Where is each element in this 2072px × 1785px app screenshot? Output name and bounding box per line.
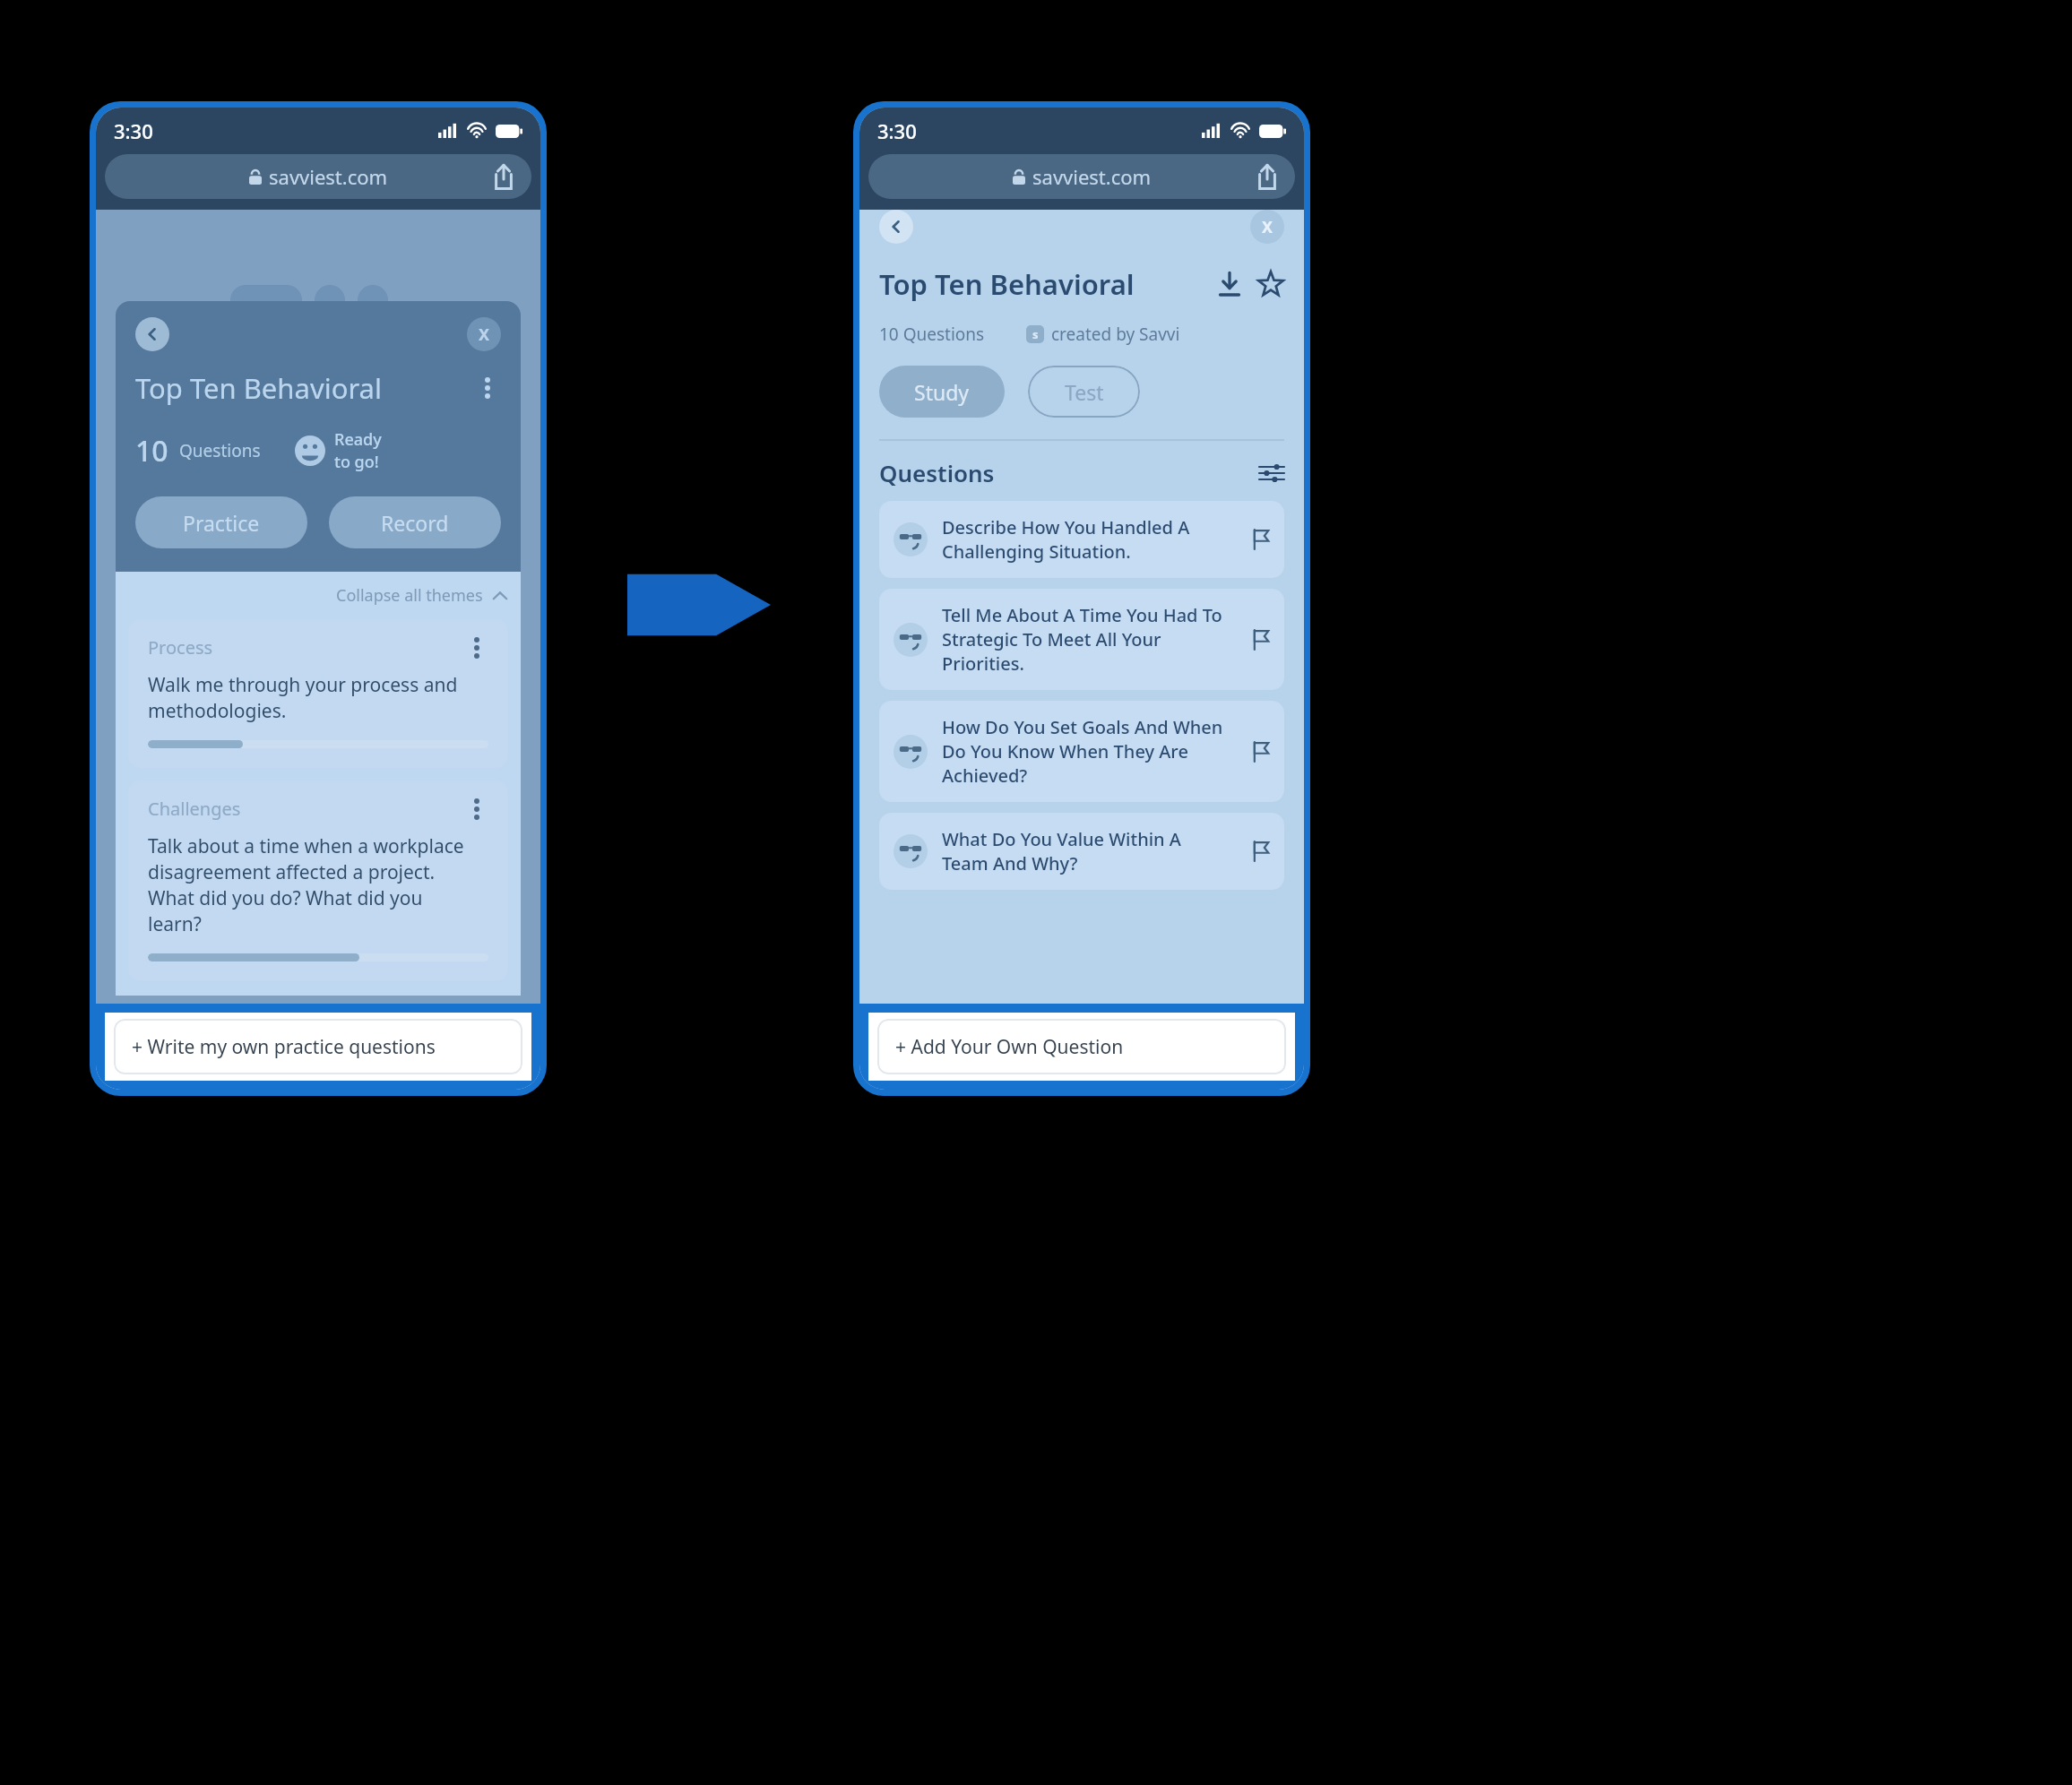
staticText: What did you do? What did you xyxy=(148,885,423,911)
staticText: 3:30 xyxy=(877,117,917,144)
button[interactable]: Flag question xyxy=(1250,742,1270,762)
staticText: created by Savvi xyxy=(1051,323,1180,346)
button[interactable]: Address bar xyxy=(105,154,531,199)
staticText: disagreement affected a project. xyxy=(148,859,436,885)
staticText: Challenges xyxy=(148,797,241,821)
staticText: + Add Your Own Question xyxy=(895,1034,1124,1060)
button[interactable]: Filter xyxy=(1259,461,1284,486)
staticText: savviest.com xyxy=(1032,163,1152,190)
staticText: X xyxy=(1262,216,1273,238)
staticText: 10 xyxy=(135,431,168,470)
button[interactable]: Challenges xyxy=(128,780,508,981)
button[interactable]: Favorite xyxy=(1257,271,1284,297)
button[interactable]: Flag question xyxy=(1250,841,1270,861)
staticText: + Write my own practice questions xyxy=(132,1034,436,1060)
staticText: Practice xyxy=(183,509,260,537)
staticText: How Do You Set Goals And When xyxy=(942,715,1223,739)
button[interactable]: Process xyxy=(128,619,508,768)
button[interactable]: Theme options xyxy=(465,636,488,660)
button[interactable]: Flag question xyxy=(1250,530,1270,549)
staticText: learn? xyxy=(148,911,202,937)
button[interactable]: What Do You Value Within A xyxy=(879,813,1284,890)
button[interactable]: Describe How You Handled A xyxy=(879,501,1284,578)
staticText: Talk about a time when a workplace xyxy=(148,833,464,859)
staticText: Study xyxy=(914,378,970,406)
staticText: Priorities. xyxy=(942,651,1024,676)
staticText: Questions xyxy=(879,457,995,488)
button[interactable]: Theme options xyxy=(465,798,488,821)
staticText: Ready xyxy=(334,428,382,451)
button[interactable]: Share xyxy=(1254,163,1281,190)
staticText: Top Ten Behavioral xyxy=(879,265,1135,303)
button[interactable]: Test xyxy=(1028,366,1140,418)
staticText: Strategic To Meet All Your xyxy=(942,627,1161,651)
button[interactable]: Practice xyxy=(135,496,307,548)
staticText: 10 Questions xyxy=(879,323,985,346)
staticText: X xyxy=(479,323,490,346)
button[interactable]: Close xyxy=(467,317,501,351)
button[interactable]: + Add Your Own Question xyxy=(877,1019,1286,1074)
staticText: Test xyxy=(1065,378,1104,406)
staticText: Achieved? xyxy=(942,763,1028,788)
button[interactable]: Back xyxy=(879,210,913,244)
staticText: Walk me through your process and xyxy=(148,672,458,698)
button[interactable]: Address bar xyxy=(868,154,1295,199)
staticText: Tell Me About A Time You Had To xyxy=(942,603,1222,627)
staticText: What Do You Value Within A xyxy=(942,827,1181,851)
button[interactable]: How Do You Set Goals And When xyxy=(879,701,1284,802)
staticText: Describe How You Handled A xyxy=(942,515,1190,539)
button[interactable]: Record xyxy=(329,496,501,548)
staticText: Top Ten Behavioral xyxy=(135,369,382,407)
button[interactable]: Share xyxy=(490,163,517,190)
staticText: Questions xyxy=(179,439,261,462)
button[interactable]: Study xyxy=(879,366,1005,418)
staticText: Team And Why? xyxy=(942,851,1078,875)
button[interactable]: Back xyxy=(135,317,169,351)
button[interactable]: Download xyxy=(1216,271,1243,297)
staticText: methodologies. xyxy=(148,698,287,724)
staticText: savviest.com xyxy=(269,163,388,190)
button[interactable]: Close xyxy=(1250,210,1284,244)
staticText: Do You Know When They Are xyxy=(942,739,1188,763)
staticText: 3:30 xyxy=(114,117,153,144)
button[interactable]: Collapse all themes xyxy=(128,584,508,607)
staticText: s xyxy=(1032,326,1039,342)
staticText: to go! xyxy=(334,451,379,473)
button[interactable]: Flag question xyxy=(1250,630,1270,650)
staticText: Record xyxy=(381,509,449,537)
staticText: Collapse all themes xyxy=(336,584,483,607)
staticText: Challenging Situation. xyxy=(942,539,1131,564)
button[interactable]: More options xyxy=(474,375,501,401)
button[interactable]: + Write my own practice questions xyxy=(114,1019,522,1074)
button[interactable]: Tell Me About A Time You Had To xyxy=(879,589,1284,690)
staticText: Process xyxy=(148,635,213,660)
